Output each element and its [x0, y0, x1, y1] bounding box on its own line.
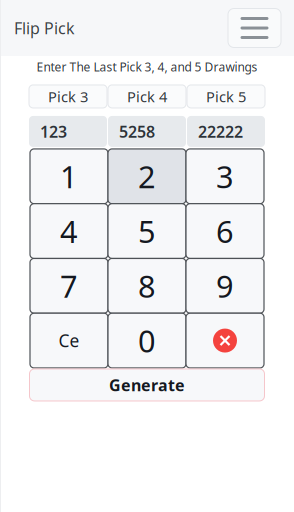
staticText: Pick 5 — [206, 87, 246, 106]
button[interactable]: 2 — [108, 149, 186, 204]
staticText: 9 — [216, 265, 234, 306]
button[interactable]: Menu — [228, 8, 281, 47]
staticText: Pick 3 — [48, 87, 88, 106]
staticText: Flip Pick — [14, 17, 75, 39]
staticText: Generate — [109, 374, 185, 395]
button[interactable]: 8 — [108, 258, 186, 313]
button[interactable]: Generate — [29, 369, 264, 401]
button[interactable]: 7 — [30, 258, 108, 313]
staticText: 3 — [216, 156, 234, 197]
staticText: 0 — [138, 320, 156, 361]
button[interactable]: Pick 4 — [108, 85, 186, 108]
staticText: 7 — [60, 265, 78, 306]
button[interactable]: 9 — [186, 258, 264, 313]
button[interactable]: 3 — [186, 149, 264, 204]
button[interactable]: Pick 5 — [187, 85, 265, 108]
button[interactable]: 4 — [30, 204, 108, 258]
button[interactable]: 1 — [30, 149, 108, 204]
staticText: 22222 — [198, 121, 243, 142]
staticText: Pick 4 — [127, 87, 167, 106]
staticText: 1 — [60, 156, 78, 197]
staticText: 8 — [138, 265, 156, 306]
staticText: 4 — [60, 211, 78, 251]
button[interactable]: Ce — [30, 313, 108, 368]
button[interactable]: 5 — [108, 204, 186, 258]
staticText: 5 — [138, 211, 156, 251]
staticText: Enter The Last Pick 3, 4, and 5 Drawings — [36, 59, 257, 75]
button[interactable]: Delete — [186, 313, 264, 368]
staticText: 123 — [40, 121, 67, 142]
staticText: 6 — [216, 211, 234, 251]
button[interactable]: 0 — [108, 313, 186, 368]
staticText: 5258 — [119, 121, 155, 142]
button[interactable]: 6 — [186, 204, 264, 258]
staticText: Ce — [58, 329, 79, 352]
staticText: 2 — [138, 156, 156, 197]
button[interactable]: Pick 3 — [29, 85, 107, 108]
